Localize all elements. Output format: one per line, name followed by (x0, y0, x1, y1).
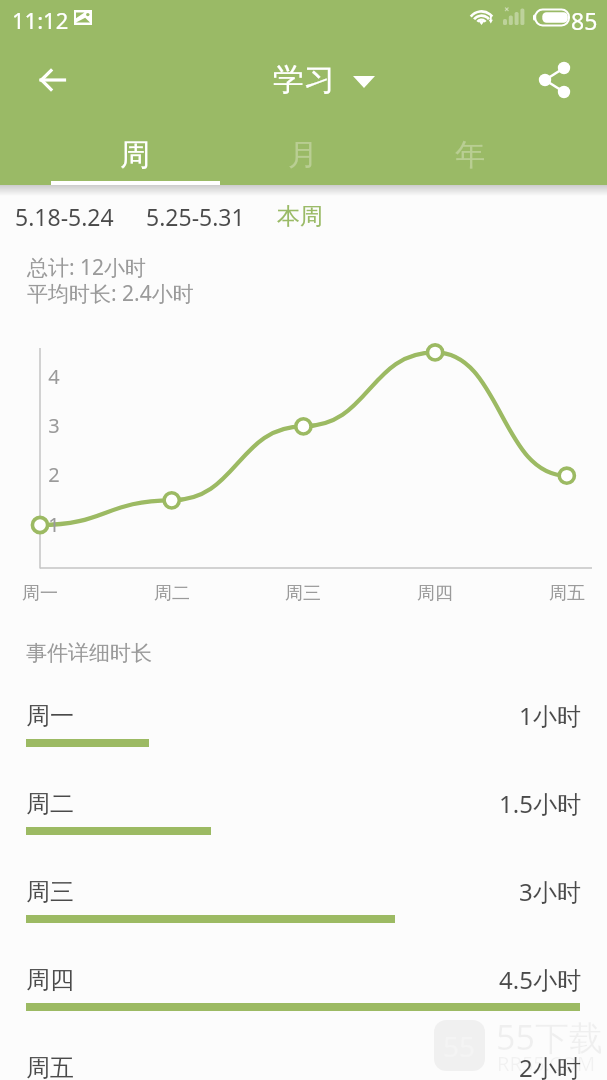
staticText: 85 (571, 5, 598, 36)
button[interactable]: Share (531, 56, 579, 104)
staticText: 55下载 (496, 1014, 603, 1060)
staticText: 周二 (26, 789, 74, 819)
staticText: 2 (44, 461, 64, 488)
button[interactable]: Back (28, 56, 76, 104)
staticText: 1 (44, 511, 64, 538)
staticText: 1小时 (519, 699, 581, 732)
button[interactable]: 月 (219, 124, 387, 185)
staticText: 5.18-5.24 (15, 201, 114, 232)
staticText: 3 (44, 412, 64, 439)
button[interactable]: 本周 (261, 194, 339, 239)
staticText: 周 (120, 136, 150, 174)
staticText: 周四 (395, 582, 475, 605)
button[interactable]: 年 (386, 124, 554, 185)
button[interactable]: 周三 (0, 875, 607, 963)
staticText: 11:12 (12, 5, 69, 35)
staticText: 周三 (26, 877, 74, 907)
button[interactable]: 周五 (0, 1051, 607, 1080)
button[interactable]: 周四 (0, 963, 607, 1051)
staticText: 周二 (132, 582, 212, 605)
button[interactable]: 周 (51, 124, 219, 185)
button[interactable]: 5.18-5.24 (0, 193, 130, 240)
button[interactable]: 学习 (269, 56, 379, 103)
staticText: 4.5小时 (499, 963, 581, 996)
staticText: 1.5小时 (499, 787, 581, 820)
staticText: 3小时 (519, 875, 581, 908)
staticText: 5.25-5.31 (146, 201, 245, 232)
staticText: RR55.COM (497, 1050, 596, 1077)
button[interactable]: 周一 (0, 699, 607, 787)
staticText: 本周 (277, 202, 323, 231)
staticText: 事件详细时长 (26, 640, 152, 666)
staticText: 周五 (26, 1053, 74, 1080)
staticText: 月 (288, 136, 318, 174)
staticText: 学习 (273, 60, 335, 99)
staticText: 周一 (26, 701, 74, 731)
staticText: 平均时长: 2.4小时 (27, 279, 194, 308)
staticText: 周四 (26, 965, 74, 995)
staticText: 周一 (0, 582, 80, 605)
staticText: 2小时 (519, 1051, 581, 1080)
button[interactable]: 5.25-5.31 (130, 193, 261, 240)
staticText: 4 (44, 363, 64, 390)
staticText: 年 (455, 136, 485, 174)
staticText: 周五 (527, 582, 607, 605)
button[interactable]: 周二 (0, 787, 607, 875)
staticText: 周三 (263, 582, 343, 605)
staticText: 总计: 12小时 (27, 253, 147, 282)
